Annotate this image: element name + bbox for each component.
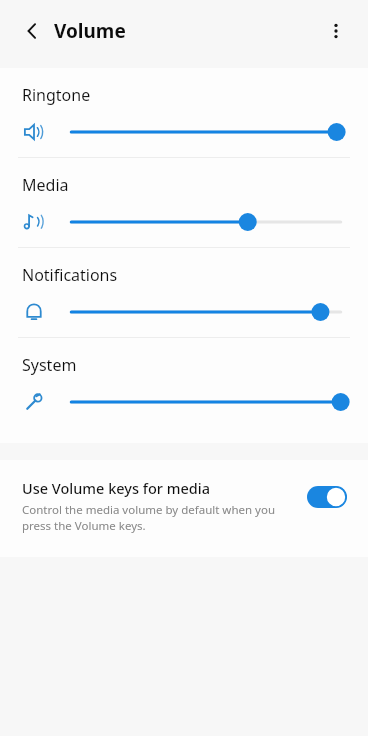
button[interactable]: Notifications: [0, 248, 368, 337]
button[interactable]: Use Volume keys for media: [0, 460, 368, 557]
staticText: Notifications: [22, 264, 118, 286]
button[interactable]: System: [0, 338, 368, 427]
staticText: System: [22, 354, 77, 376]
button[interactable]: Back: [14, 13, 50, 49]
button[interactable]: More options: [316, 11, 356, 51]
staticText: Control the media volume by default when…: [22, 502, 292, 533]
button[interactable]: Ringtone: [0, 68, 368, 157]
staticText: Ringtone: [22, 84, 91, 106]
button[interactable]: [70, 117, 342, 147]
staticText: Media: [22, 174, 69, 196]
button[interactable]: [70, 297, 342, 327]
button[interactable]: [70, 387, 342, 417]
staticText: Volume: [54, 18, 126, 44]
button[interactable]: Media: [0, 158, 368, 247]
button[interactable]: [70, 207, 342, 237]
button[interactable]: Use Volume keys for media toggle: [304, 482, 350, 512]
staticText: Use Volume keys for media: [22, 478, 210, 498]
